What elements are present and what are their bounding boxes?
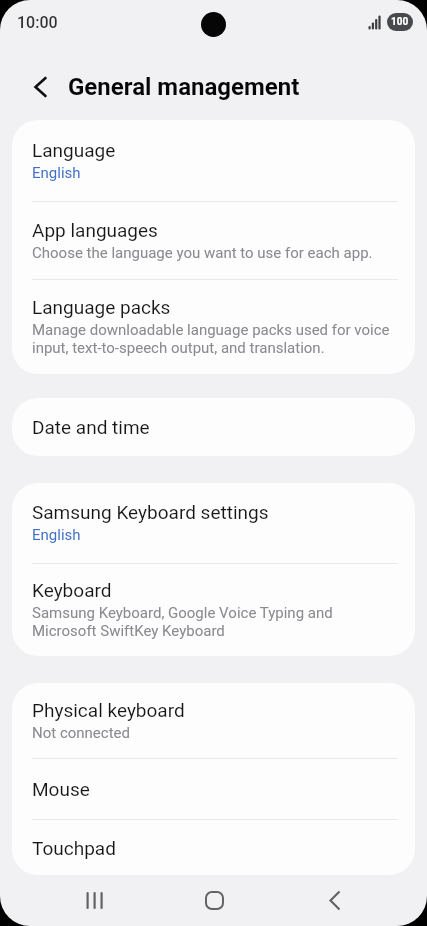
button[interactable]: Language packs <box>12 280 415 374</box>
staticText: Date and time <box>32 416 150 438</box>
staticText: Keyboard <box>32 579 112 601</box>
staticText: English <box>32 164 81 182</box>
button[interactable]: Language <box>12 120 415 201</box>
staticText: Touchpad <box>32 837 116 859</box>
staticText: English <box>32 526 81 544</box>
staticText: 10:00 <box>17 13 58 32</box>
button[interactable] <box>194 880 234 920</box>
button[interactable] <box>20 67 60 107</box>
button[interactable]: Physical keyboard <box>12 683 415 758</box>
button[interactable]: Date and time <box>12 398 415 456</box>
staticText: 100 <box>391 16 409 28</box>
staticText: Not connected <box>32 724 130 742</box>
button[interactable]: Keyboard <box>12 564 415 656</box>
staticText: Mouse <box>32 778 90 800</box>
staticText: Samsung Keyboard, Google Voice Typing an… <box>32 604 333 640</box>
staticText: Language <box>32 139 116 161</box>
button[interactable]: Samsung Keyboard settings <box>12 483 415 563</box>
staticText: App languages <box>32 219 158 241</box>
button[interactable]: App languages <box>12 202 415 279</box>
staticText: Samsung Keyboard settings <box>32 501 269 523</box>
staticText: General management <box>68 73 300 101</box>
staticText: Physical keyboard <box>32 699 185 721</box>
button[interactable] <box>74 880 114 920</box>
staticText: Choose the language you want to use for … <box>32 244 373 262</box>
button[interactable]: Mouse <box>12 759 415 819</box>
button[interactable] <box>315 880 355 920</box>
staticText: Language packs <box>32 296 171 318</box>
button[interactable]: Touchpad <box>12 820 415 875</box>
staticText: Manage downloadable language packs used … <box>32 321 395 357</box>
